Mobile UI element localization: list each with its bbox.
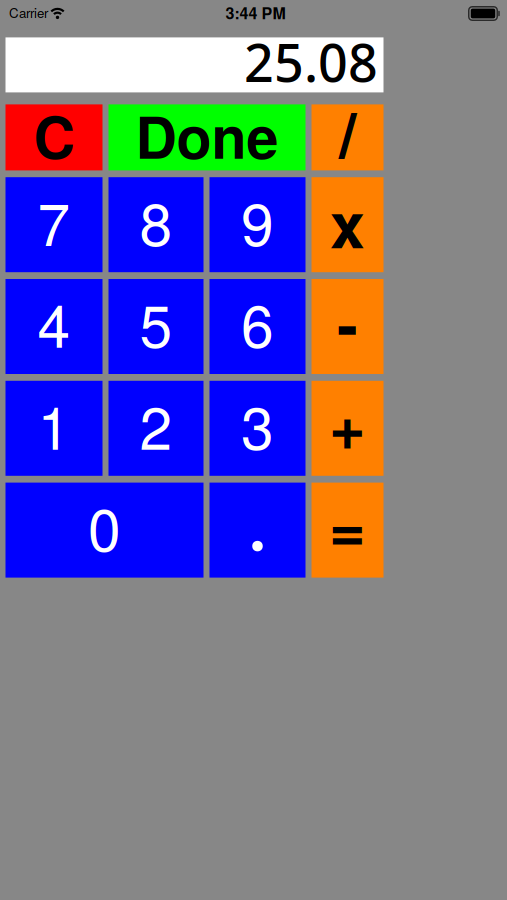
staticText: - [337, 277, 358, 367]
button[interactable]: 5 [108, 279, 203, 374]
button[interactable]: 2 [108, 381, 203, 476]
staticText: 25.08 [244, 26, 378, 97]
staticText: 5 [139, 280, 172, 364]
staticText: 6 [241, 280, 274, 364]
staticText: + [329, 379, 366, 469]
button[interactable]: 1 [5, 381, 102, 476]
staticText: 7 [37, 179, 70, 263]
staticText: x [330, 178, 365, 267]
staticText: 4 [37, 280, 70, 364]
button[interactable]: / [311, 104, 383, 170]
staticText: 3:44 PM [225, 1, 285, 24]
button[interactable]: 3 [209, 381, 305, 476]
staticText: Done [135, 94, 278, 176]
staticText: 1 [37, 382, 70, 466]
button[interactable]: C [5, 104, 102, 170]
staticText: Carrier [9, 3, 48, 22]
button[interactable]: = [311, 483, 383, 578]
button[interactable]: 0 [5, 483, 203, 578]
button[interactable]: + [311, 381, 383, 476]
staticText: = [329, 481, 366, 570]
button[interactable]: x [311, 177, 383, 272]
button[interactable]: 6 [209, 279, 305, 374]
staticText: C [33, 94, 74, 176]
staticText: 8 [139, 179, 172, 263]
button[interactable]: - [311, 279, 383, 374]
button[interactable]: 4 [5, 279, 102, 374]
button[interactable]: 8 [108, 177, 203, 272]
button[interactable]: Done [108, 104, 305, 170]
staticText: 2 [139, 382, 172, 466]
button[interactable]: 9 [209, 177, 305, 272]
staticText: / [339, 87, 356, 177]
staticText: 9 [241, 179, 274, 263]
staticText: 0 [88, 484, 121, 568]
button[interactable]: Decimal point [209, 483, 305, 578]
staticText: 3 [241, 382, 274, 466]
button[interactable]: 7 [5, 177, 102, 272]
